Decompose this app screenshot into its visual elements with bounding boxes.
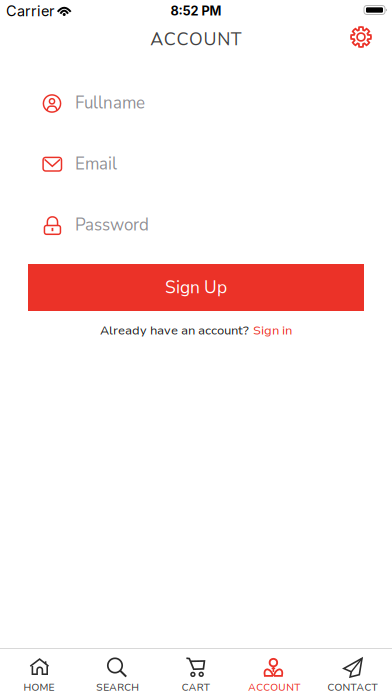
staticText: SEARCH bbox=[96, 680, 139, 694]
staticText: Already have an account? bbox=[100, 322, 249, 339]
staticText: Password bbox=[75, 213, 149, 237]
button[interactable]: Settings bbox=[350, 26, 372, 48]
button[interactable]: Email bbox=[0, 144, 392, 184]
staticText: Fullname bbox=[75, 91, 145, 115]
button[interactable]: Fullname bbox=[0, 83, 392, 123]
button[interactable]: Sign in bbox=[253, 322, 292, 339]
button[interactable]: SEARCH bbox=[78, 649, 157, 696]
button[interactable]: HOME bbox=[0, 649, 78, 696]
staticText: CART bbox=[181, 680, 210, 694]
staticText: CONTACT bbox=[327, 680, 378, 694]
staticText: Sign in bbox=[253, 322, 292, 339]
staticText: Email bbox=[75, 152, 117, 176]
button[interactable]: CART bbox=[157, 649, 235, 696]
staticText: 8:52 PM bbox=[170, 3, 221, 19]
button[interactable]: CONTACT bbox=[314, 649, 392, 696]
button[interactable]: ACCOUNT bbox=[235, 649, 314, 696]
staticText: Carrier bbox=[6, 2, 54, 20]
staticText: ACCOUNT bbox=[248, 680, 301, 694]
staticText: ACCOUNT bbox=[150, 27, 242, 52]
staticText: HOME bbox=[23, 680, 55, 694]
button[interactable]: Password bbox=[0, 205, 392, 245]
button[interactable]: Sign Up bbox=[28, 264, 364, 311]
staticText: Sign Up bbox=[165, 276, 227, 299]
